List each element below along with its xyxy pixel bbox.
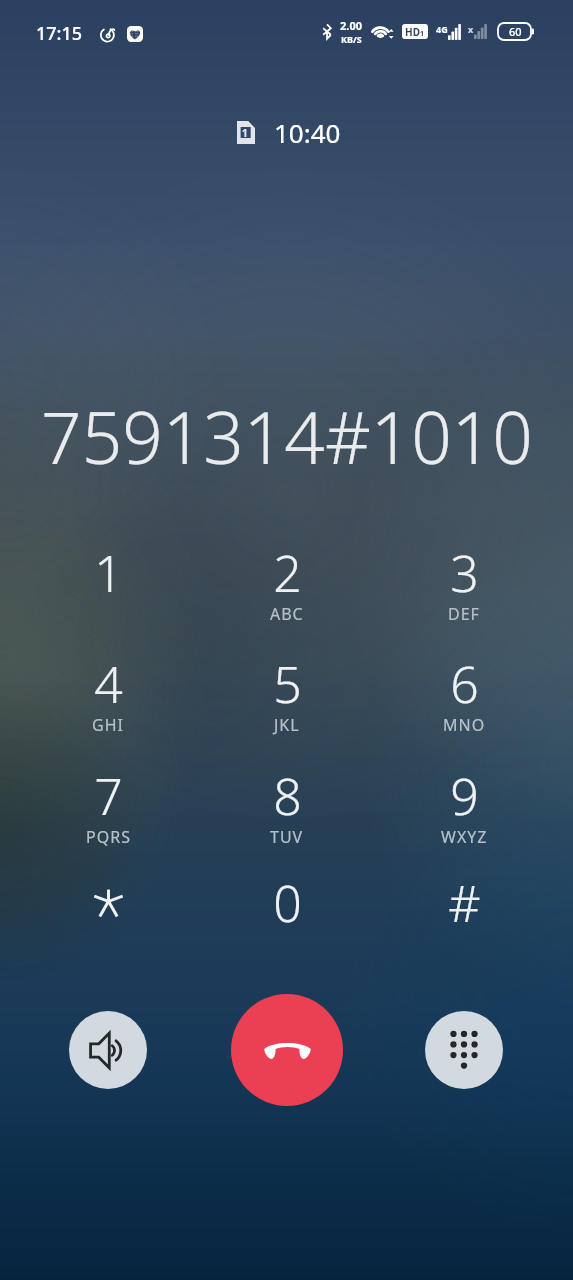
button[interactable]: 3 — [375, 519, 553, 629]
staticText: MNO — [443, 714, 486, 736]
staticText: 4G — [436, 23, 448, 35]
button[interactable]: 5 — [198, 630, 376, 740]
staticText: 1 — [420, 29, 425, 39]
staticText: 7591314#1010 — [41, 388, 533, 485]
button[interactable]: End call — [231, 994, 343, 1106]
button[interactable]: Speaker — [69, 1011, 147, 1089]
staticText: 1 — [242, 126, 248, 140]
staticText: 17:15 — [36, 21, 83, 46]
button[interactable]: 4 — [19, 630, 197, 740]
staticText: DEF — [448, 603, 480, 625]
button[interactable]: 0 — [198, 849, 376, 959]
staticText: 7 — [94, 762, 123, 830]
button[interactable]: 7 — [19, 742, 197, 852]
button[interactable]: 2 — [198, 519, 376, 629]
staticText: ABC — [270, 603, 304, 625]
staticText: 6 — [450, 650, 479, 718]
staticText: 1 — [94, 539, 123, 607]
staticText: 5 — [273, 650, 302, 718]
staticText: 10:40 — [274, 115, 341, 150]
staticText: HD — [405, 25, 420, 39]
staticText: 0 — [273, 869, 302, 937]
staticText: GHI — [92, 714, 124, 736]
button[interactable]: 6 — [375, 630, 553, 740]
staticText: 60 — [509, 24, 522, 39]
staticText: TUV — [270, 826, 304, 848]
staticText: x — [468, 23, 474, 35]
button[interactable]: 9 — [375, 742, 553, 852]
staticText: 3 — [450, 539, 479, 607]
button[interactable]: 8 — [198, 742, 376, 852]
button[interactable] — [19, 849, 197, 959]
staticText: 4 — [94, 650, 123, 718]
staticText: WXYZ — [441, 826, 488, 848]
staticText: 2 — [273, 539, 302, 607]
staticText: JKL — [274, 714, 300, 736]
button[interactable]: 1 — [19, 519, 197, 629]
staticText: KB/S — [341, 33, 362, 45]
staticText: PQRS — [86, 826, 131, 848]
staticText: 2.00 — [340, 18, 362, 33]
staticText: 9 — [450, 762, 479, 830]
staticText: # — [448, 869, 481, 937]
button[interactable]: Keypad — [425, 1011, 503, 1089]
staticText: 8 — [273, 762, 302, 830]
button[interactable]: # — [375, 849, 553, 959]
